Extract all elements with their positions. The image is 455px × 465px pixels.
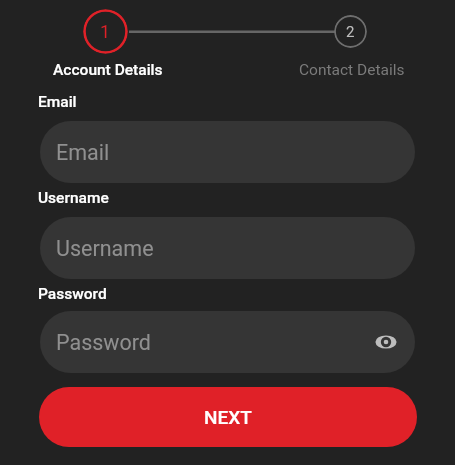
staticText: Account Details bbox=[53, 61, 163, 79]
button[interactable]: NEXT bbox=[39, 387, 417, 447]
staticText: Username bbox=[38, 189, 109, 207]
staticText: Username bbox=[56, 236, 154, 261]
button[interactable]: Step 1 Account Details bbox=[83, 9, 128, 54]
staticText: Email bbox=[56, 140, 110, 165]
staticText: Email bbox=[38, 93, 77, 111]
staticText: 1 bbox=[100, 21, 111, 42]
button[interactable]: Username bbox=[40, 217, 415, 279]
staticText: Password bbox=[56, 330, 151, 355]
staticText: Contact Details bbox=[299, 61, 405, 79]
staticText: Password bbox=[38, 285, 107, 303]
staticText: 2 bbox=[346, 23, 355, 41]
button[interactable]: Show password bbox=[371, 327, 401, 357]
staticText: NEXT bbox=[204, 406, 252, 428]
button[interactable]: Password bbox=[40, 311, 415, 373]
button[interactable]: Step 2 Contact Details bbox=[334, 15, 367, 48]
button[interactable]: Email bbox=[40, 121, 415, 183]
